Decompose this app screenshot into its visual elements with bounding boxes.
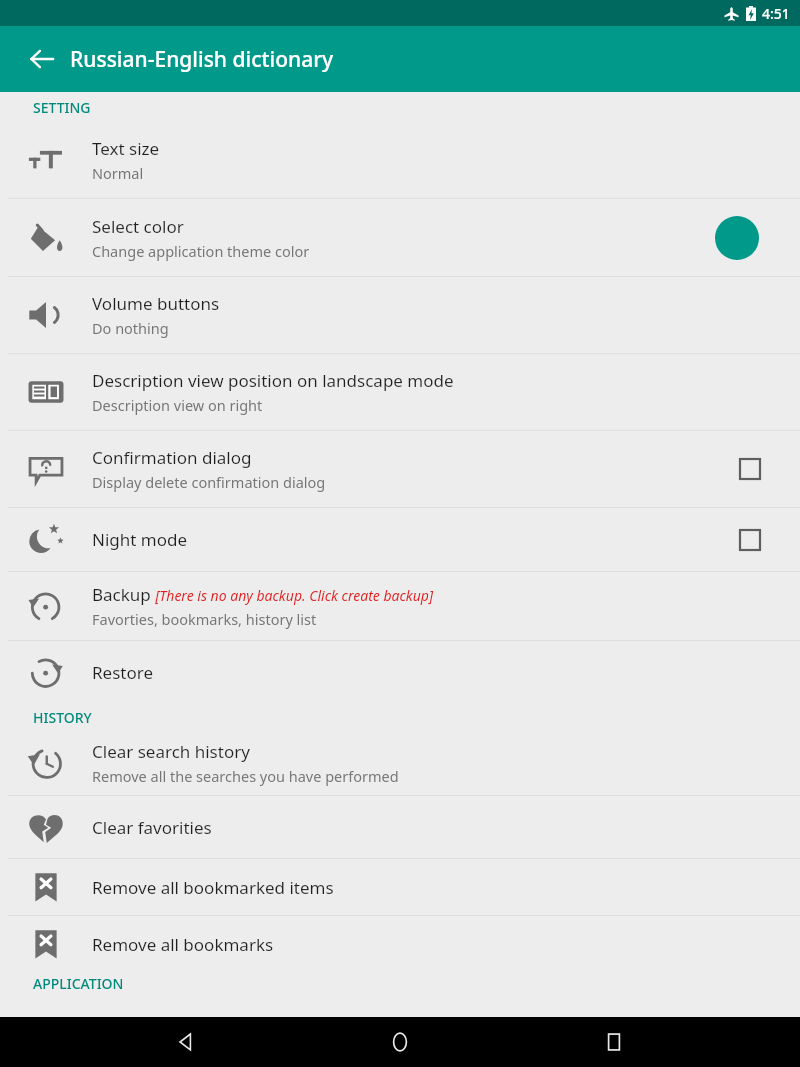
- staticText: Remove all bookmarks: [92, 933, 274, 956]
- staticText: Russian-English dictionary: [70, 45, 334, 74]
- button[interactable]: Clear search history: [0, 731, 800, 795]
- staticText: Select color: [92, 215, 184, 238]
- staticText: HISTORY: [33, 708, 92, 727]
- button[interactable]: Description view position on landscape m…: [0, 354, 800, 430]
- button[interactable]: Back: [18, 35, 66, 83]
- button[interactable]: Clear favorities: [0, 796, 800, 858]
- staticText: Remove all the searches you have perform…: [92, 766, 399, 786]
- button[interactable]: Home: [372, 1017, 428, 1067]
- staticText: Restore: [92, 661, 153, 684]
- staticText: Night mode: [92, 528, 188, 551]
- staticText: Normal: [92, 163, 144, 183]
- button[interactable]: Confirmation dialog: [0, 431, 800, 507]
- button[interactable]: Remove all bookmarks: [0, 916, 800, 972]
- button[interactable]: Text size: [0, 122, 800, 198]
- staticText: SETTING: [33, 98, 91, 117]
- staticText: Favorties, bookmarks, history list: [92, 609, 317, 629]
- button[interactable]: Select color: [0, 199, 800, 276]
- staticText: Description view position on landscape m…: [92, 369, 454, 392]
- button[interactable]: Recent apps: [586, 1017, 642, 1067]
- button[interactable]: Back: [158, 1017, 214, 1067]
- staticText: Change application theme color: [92, 241, 310, 261]
- button[interactable]: Volume buttons: [0, 277, 800, 353]
- staticText: Description view on right: [92, 395, 263, 415]
- staticText: APPLICATION: [33, 974, 124, 993]
- staticText: Remove all bookmarked items: [92, 876, 334, 899]
- button[interactable]: Backup [There is no any backup. Click cr…: [0, 572, 800, 640]
- staticText: Text size: [92, 137, 160, 160]
- staticText: Clear favorities: [92, 816, 212, 839]
- staticText: Confirmation dialog: [92, 446, 252, 469]
- staticText: 4:51: [762, 4, 790, 23]
- staticText: Clear search history: [92, 740, 250, 763]
- button[interactable]: Night mode: [0, 508, 800, 571]
- button[interactable]: Remove all bookmarked items: [0, 859, 800, 915]
- button[interactable]: Restore: [0, 641, 800, 703]
- staticText: Do nothing: [92, 318, 169, 338]
- staticText: Backup [There is no any backup. Click cr…: [92, 583, 434, 606]
- staticText: Display delete confirmation dialog: [92, 472, 326, 492]
- staticText: Volume buttons: [92, 292, 220, 315]
